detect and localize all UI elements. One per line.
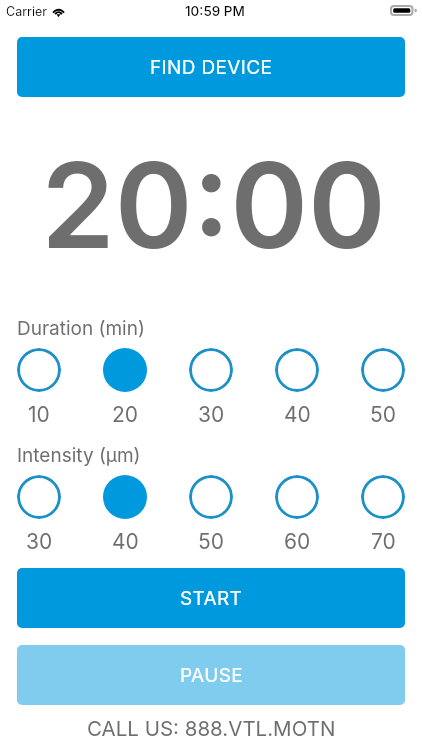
staticText: PAUSE (180, 664, 243, 687)
button[interactable]: Intensity (µm) 60 (275, 475, 319, 519)
staticText: CALL US: 888.VTL.MOTN (87, 716, 336, 741)
button[interactable]: Intensity (µm) 50 (189, 475, 233, 519)
staticText: 30 (26, 529, 53, 554)
button[interactable]: PAUSE (17, 645, 405, 705)
staticText: Intensity (µm) (17, 444, 141, 467)
button[interactable]: Intensity (µm) 30 (17, 475, 61, 519)
button[interactable]: Duration (min) 40 (275, 348, 319, 392)
staticText: 10:59 PM (185, 3, 245, 19)
staticText: START (180, 587, 243, 610)
staticText: Carrier (6, 4, 47, 19)
staticText: 10 (28, 402, 50, 427)
button[interactable]: FIND DEVICE (17, 37, 405, 97)
staticText: 30 (198, 402, 225, 427)
button[interactable]: Intensity (µm) 40 (103, 475, 147, 519)
staticText: 40 (284, 402, 311, 427)
staticText: 50 (370, 402, 397, 427)
staticText: 60 (284, 529, 311, 554)
button[interactable]: Duration (min) 20 (103, 348, 147, 392)
staticText: 50 (198, 529, 225, 554)
button[interactable]: START (17, 568, 405, 628)
button[interactable]: Intensity (µm) 70 (361, 475, 405, 519)
button[interactable]: Duration (min) 10 (17, 348, 61, 392)
button[interactable]: Duration (min) 30 (189, 348, 233, 392)
staticText: Duration (min) (17, 317, 145, 340)
button[interactable]: Duration (min) 50 (361, 348, 405, 392)
staticText: 20:00 (41, 134, 386, 277)
staticText: 70 (371, 529, 396, 554)
staticText: 20 (112, 402, 139, 427)
staticText: FIND DEVICE (150, 56, 273, 79)
staticText: 40 (112, 529, 139, 554)
